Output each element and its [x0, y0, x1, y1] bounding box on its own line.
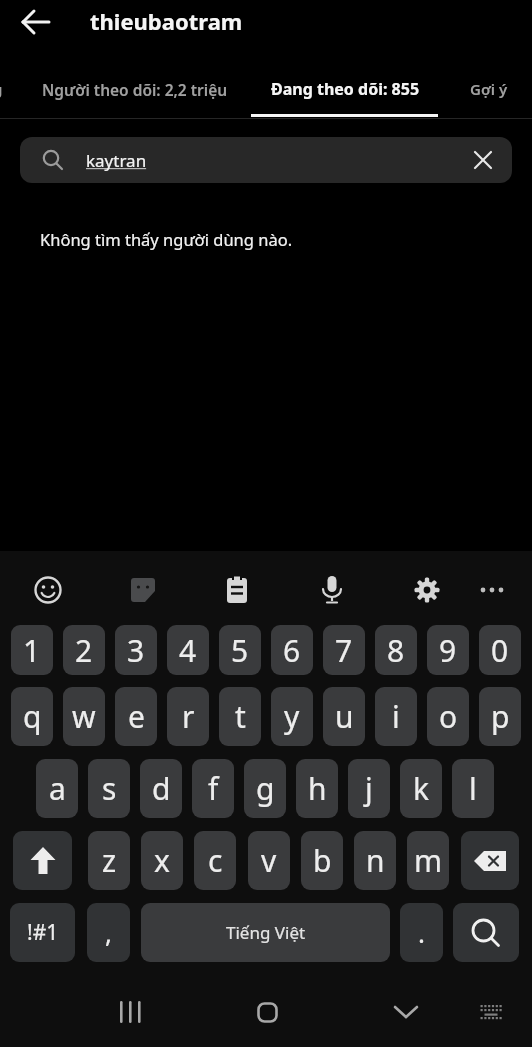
- staticText: Gợi ý: [470, 79, 508, 99]
- button[interactable]: kaytran: [20, 137, 512, 183]
- button[interactable]: c: [194, 831, 236, 890]
- staticText: w: [72, 696, 96, 737]
- staticText: Đang theo dõi: 855: [271, 78, 420, 100]
- button[interactable]: j: [348, 759, 390, 818]
- button[interactable]: 0: [479, 625, 521, 675]
- staticText: f: [208, 768, 219, 809]
- button[interactable]: [461, 831, 519, 890]
- button[interactable]: ,: [87, 903, 130, 962]
- button[interactable]: d: [140, 759, 182, 818]
- button[interactable]: Tiếng Việt: [141, 903, 390, 962]
- staticText: thieubaotram: [90, 6, 243, 36]
- button[interactable]: m: [407, 831, 449, 890]
- button[interactable]: l: [452, 759, 494, 818]
- staticText: s: [102, 768, 117, 809]
- button[interactable]: f: [192, 759, 234, 818]
- button[interactable]: [14, 2, 58, 42]
- staticText: 4: [179, 630, 197, 671]
- staticText: v: [261, 840, 277, 881]
- staticText: 1: [23, 630, 41, 671]
- button[interactable]: [119, 566, 167, 614]
- staticText: 6: [283, 630, 301, 671]
- staticText: m: [414, 840, 443, 881]
- button[interactable]: k: [400, 759, 442, 818]
- button[interactable]: u: [323, 687, 365, 746]
- button[interactable]: [472, 574, 512, 606]
- staticText: q: [23, 696, 42, 737]
- button[interactable]: Gợi ý: [446, 66, 532, 112]
- button[interactable]: b: [301, 831, 343, 890]
- button[interactable]: 5: [219, 625, 261, 675]
- button[interactable]: [308, 566, 356, 614]
- staticText: 2: [75, 630, 93, 671]
- button[interactable]: o: [427, 687, 469, 746]
- button[interactable]: [24, 566, 72, 614]
- staticText: !#1: [27, 918, 59, 947]
- button[interactable]: z: [88, 831, 130, 890]
- staticText: Không tìm thấy người dùng nào.: [40, 228, 293, 250]
- staticText: 0: [491, 630, 509, 671]
- button[interactable]: y: [271, 687, 313, 746]
- button[interactable]: [106, 988, 154, 1036]
- button[interactable]: 6: [271, 625, 313, 675]
- staticText: p: [491, 696, 510, 737]
- staticText: h: [308, 768, 327, 809]
- staticText: 5: [231, 630, 249, 671]
- button[interactable]: !#1: [10, 903, 75, 962]
- staticText: 3: [127, 630, 145, 671]
- staticText: i: [392, 696, 400, 737]
- button[interactable]: [467, 992, 515, 1032]
- button[interactable]: t: [219, 687, 261, 746]
- staticText: 9: [439, 630, 457, 671]
- button[interactable]: Đang theo dõi: 855: [252, 66, 438, 112]
- button[interactable]: 1: [11, 625, 53, 675]
- button[interactable]: [464, 141, 502, 179]
- button[interactable]: Người theo dõi: 2,2 triệu: [24, 66, 246, 112]
- staticText: k: [413, 768, 430, 809]
- staticText: Người theo dõi: 2,2 triệu: [42, 79, 228, 100]
- staticText: x: [154, 840, 170, 881]
- staticText: a: [49, 768, 66, 809]
- button[interactable]: i: [375, 687, 417, 746]
- button[interactable]: 4: [167, 625, 209, 675]
- button[interactable]: p: [479, 687, 521, 746]
- button[interactable]: [453, 903, 519, 962]
- button[interactable]: g: [244, 759, 286, 818]
- button[interactable]: h: [296, 759, 338, 818]
- button[interactable]: [13, 831, 72, 890]
- button[interactable]: x: [141, 831, 183, 890]
- button[interactable]: .: [400, 903, 443, 962]
- button[interactable]: [403, 566, 451, 614]
- staticText: d: [152, 768, 171, 809]
- staticText: e: [128, 696, 145, 737]
- staticText: ,: [105, 915, 112, 950]
- button[interactable]: n: [354, 831, 396, 890]
- staticText: g: [0, 79, 3, 99]
- button[interactable]: 7: [323, 625, 365, 675]
- staticText: l: [469, 768, 477, 809]
- button[interactable]: v: [248, 831, 290, 890]
- button[interactable]: s: [88, 759, 130, 818]
- button[interactable]: 8: [375, 625, 417, 675]
- staticText: c: [208, 840, 223, 881]
- button[interactable]: w: [63, 687, 105, 746]
- staticText: u: [335, 696, 354, 737]
- staticText: .: [418, 915, 425, 950]
- button[interactable]: [213, 566, 261, 614]
- button[interactable]: 2: [63, 625, 105, 675]
- staticText: y: [284, 696, 300, 737]
- staticText: t: [235, 696, 246, 737]
- button[interactable]: [382, 988, 430, 1036]
- button[interactable]: q: [11, 687, 53, 746]
- staticText: Tiếng Việt: [226, 921, 306, 944]
- button[interactable]: 3: [115, 625, 157, 675]
- button[interactable]: 9: [427, 625, 469, 675]
- staticText: b: [313, 840, 332, 881]
- button[interactable]: e: [115, 687, 157, 746]
- staticText: j: [365, 768, 373, 809]
- staticText: r: [182, 696, 195, 737]
- button[interactable]: a: [36, 759, 78, 818]
- button[interactable]: r: [167, 687, 209, 746]
- button[interactable]: [243, 988, 291, 1036]
- staticText: z: [102, 840, 117, 881]
